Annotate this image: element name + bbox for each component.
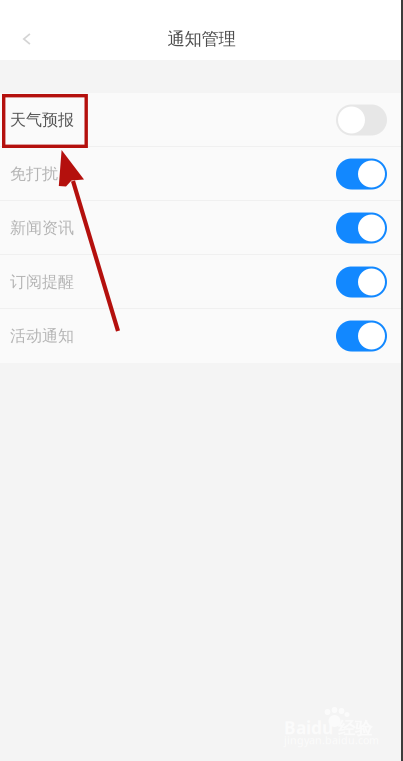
staticText: 活动通知 [10, 326, 74, 346]
staticText: 订阅提醒 [10, 272, 74, 292]
button[interactable]: 订阅提醒 [0, 255, 403, 309]
button[interactable]: 新闻资讯 [0, 201, 403, 255]
button[interactable]: 天气预报 [0, 93, 403, 147]
staticText: 免打扰 [10, 164, 58, 184]
button[interactable]: 活动通知 [0, 309, 403, 363]
staticText: 通知管理 [167, 28, 235, 50]
staticText: 天气预报 [10, 110, 74, 130]
button[interactable]: Back [0, 18, 48, 60]
staticText: 新闻资讯 [10, 218, 74, 238]
button[interactable]: 免打扰 [0, 147, 403, 201]
